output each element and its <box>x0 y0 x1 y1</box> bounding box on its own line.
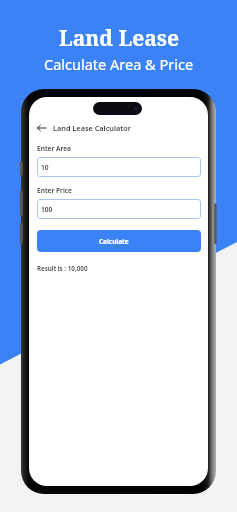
button[interactable]: 100 <box>37 199 201 219</box>
button[interactable]: Calculate <box>37 230 201 252</box>
button[interactable]: Back <box>34 121 48 135</box>
staticText: 100 <box>41 205 53 214</box>
button[interactable]: 10 <box>37 157 201 177</box>
button[interactable]: Back <box>29 121 208 135</box>
staticText: Land Lease Calculator <box>53 123 131 133</box>
staticText: Land Lease <box>59 24 179 53</box>
staticText: 10 <box>41 163 49 172</box>
staticText: Enter Area <box>37 144 71 153</box>
staticText: Calculate <box>99 237 129 246</box>
staticText: Enter Price <box>37 186 72 195</box>
staticText: Result is : 10,000 <box>37 264 88 273</box>
staticText: Calculate Area & Price <box>44 54 194 74</box>
